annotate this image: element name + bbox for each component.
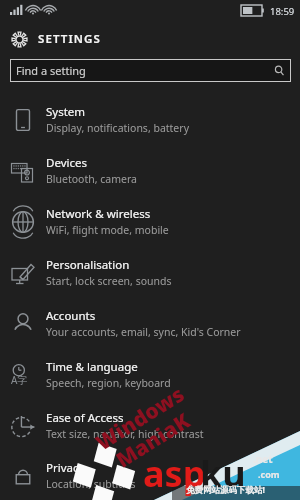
staticText: Location, subtitles xyxy=(46,477,136,491)
staticText: Accounts xyxy=(46,308,96,324)
button[interactable]: Devices xyxy=(0,145,300,196)
staticText: .com xyxy=(258,468,280,480)
staticText: ManiaK xyxy=(110,406,195,474)
staticText: Display, notifications, battery xyxy=(46,121,189,135)
button[interactable]: Network & wireless xyxy=(0,196,300,247)
staticText: .net xyxy=(253,452,273,466)
staticText: Personalisation xyxy=(46,257,130,273)
staticText: WiFi, flight mode, mobile xyxy=(46,223,169,237)
staticText: Bluetooth, camera xyxy=(46,172,137,186)
button[interactable]: Find a setting xyxy=(10,59,291,82)
staticText: Your accounts, email, sync, Kid's Corner xyxy=(46,325,241,339)
staticText: 18:59 xyxy=(270,5,295,18)
staticText: SETTINGS xyxy=(38,31,101,47)
staticText: ku xyxy=(200,449,246,498)
button[interactable]: SETTINGS xyxy=(0,22,300,56)
staticText: Find a setting xyxy=(16,63,86,78)
staticText: System xyxy=(46,104,86,120)
button[interactable]: Ease of Access xyxy=(0,400,300,451)
staticText: Start, lock screen, sounds xyxy=(46,274,172,288)
staticText: 免费网站源码下载站! xyxy=(186,484,265,496)
staticText: Privacy xyxy=(46,460,85,476)
staticText: Network & wireless xyxy=(46,206,151,222)
staticText: Devices xyxy=(46,155,87,171)
staticText: A字 xyxy=(11,373,28,387)
staticText: Windows xyxy=(90,380,190,457)
staticText: Time & language xyxy=(46,359,138,375)
button[interactable]: Privacy xyxy=(0,451,300,500)
button[interactable]: Personalisation xyxy=(0,247,300,298)
staticText: asp xyxy=(143,449,206,498)
button[interactable]: A字 xyxy=(0,349,300,400)
staticText: Speech, region, keyboard xyxy=(46,376,171,390)
button[interactable]: System xyxy=(0,94,300,145)
button[interactable]: Accounts xyxy=(0,298,300,349)
staticText: Ease of Access xyxy=(46,410,124,426)
staticText: Text size, narrator, high contrast xyxy=(46,427,204,441)
